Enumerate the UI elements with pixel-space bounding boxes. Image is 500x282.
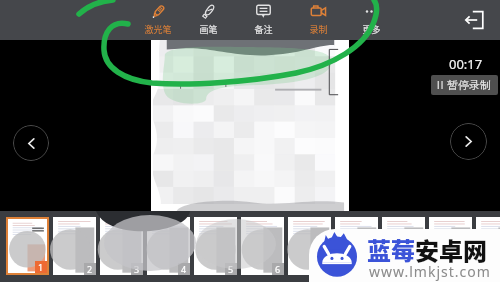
staticText: 7 [322,263,328,275]
button[interactable]: 2 [53,217,96,275]
staticText: 00:17 [449,55,483,73]
staticText: 2 [87,263,93,275]
button[interactable]: 6 [241,217,284,275]
button[interactable]: 更多 [345,0,397,40]
staticText: 安卓网 [415,232,487,267]
staticText: 暂停录制 [447,78,491,92]
staticText: 更多 [362,23,381,36]
staticText: 备注 [254,23,273,36]
staticText: 3 [134,263,140,275]
button[interactable]: 4 [147,217,190,275]
button[interactable]: Previous slide [13,125,49,161]
button[interactable]: Next slide [450,123,487,160]
staticText: 9 [416,263,422,275]
button[interactable]: 画笔 [182,0,234,40]
button[interactable]: 10 [429,217,472,275]
button[interactable]: 备注 [237,0,289,40]
button[interactable]: 9 [382,217,425,275]
staticText: 画笔 [199,23,218,36]
button[interactable]: 8 [335,217,378,275]
staticText: 1 [38,261,44,273]
button[interactable]: 录制 [292,0,344,40]
staticText: 4 [181,263,187,275]
staticText: 6 [275,263,281,275]
staticText: 10 [461,263,472,275]
button[interactable]: 暂停录制 [431,75,498,95]
staticText: 蓝莓 [367,232,415,267]
staticText: 5 [228,263,234,275]
button[interactable]: 7 [288,217,331,275]
staticText: www.lmkjst.com [369,262,491,281]
button[interactable]: 3 [100,217,143,275]
button[interactable]: 5 [194,217,237,275]
button[interactable]: 11 [476,217,500,275]
staticText: 8 [369,263,375,275]
staticText: 录制 [309,23,328,36]
staticText: 激光笔 [144,23,172,36]
button[interactable]: 激光笔 [132,0,184,40]
button[interactable]: 1 [8,219,47,273]
button[interactable]: Exit presentation [464,10,484,30]
